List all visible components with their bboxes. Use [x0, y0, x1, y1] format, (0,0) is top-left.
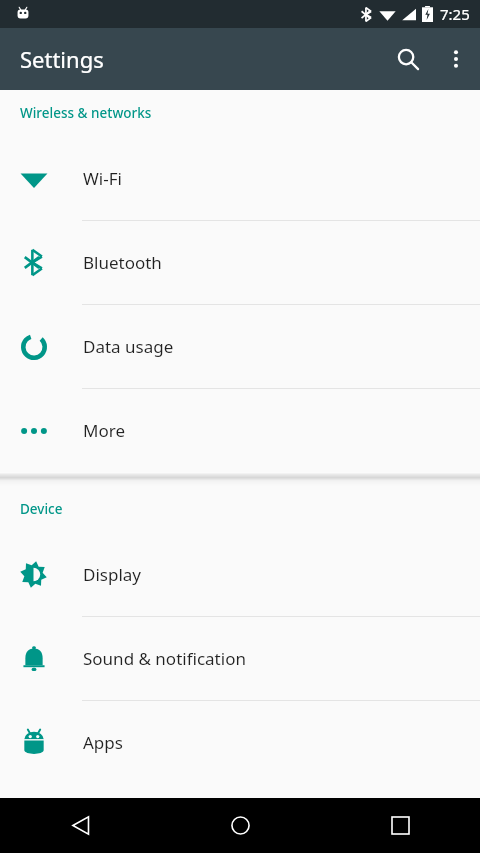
button[interactable]: Apps: [0, 701, 480, 784]
button[interactable]: More: [0, 389, 480, 472]
staticText: Sound & notification: [83, 647, 246, 670]
button[interactable]: Back: [0, 798, 160, 853]
button[interactable]: Search: [384, 35, 432, 83]
button[interactable]: Sound & notification: [0, 617, 480, 700]
button[interactable]: Display: [0, 532, 480, 616]
button[interactable]: Recent apps: [320, 798, 480, 853]
button[interactable]: Data usage: [0, 305, 480, 388]
staticText: Wi-Fi: [83, 167, 122, 190]
staticText: Data usage: [83, 335, 174, 358]
staticText: Settings: [20, 44, 104, 74]
staticText: Wireless & networks: [20, 104, 152, 122]
staticText: Apps: [83, 731, 123, 754]
staticText: Bluetooth: [83, 251, 162, 274]
staticText: Display: [83, 563, 141, 586]
button[interactable]: More options: [432, 35, 480, 83]
button[interactable]: Home: [160, 798, 320, 853]
staticText: More: [83, 419, 125, 442]
staticText: 7:25: [440, 4, 470, 24]
button[interactable]: Wi-Fi: [0, 136, 480, 220]
button[interactable]: Bluetooth: [0, 221, 480, 304]
staticText: Device: [20, 500, 63, 518]
